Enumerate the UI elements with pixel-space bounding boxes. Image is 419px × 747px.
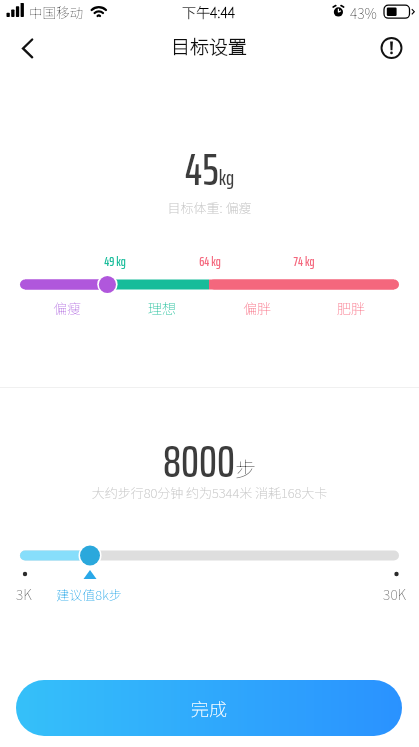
staticText: 完成 — [191, 695, 227, 721]
staticText: 理想 — [102, 298, 222, 318]
button[interactable]: 完成 — [16, 680, 402, 736]
staticText: 8000步 — [0, 426, 419, 497]
staticText: 目标设置 — [171, 32, 248, 60]
staticText: 45kg — [0, 134, 419, 205]
staticText: 3K — [16, 584, 32, 604]
staticText: 偏瘦 — [7, 298, 127, 318]
button[interactable]: Target weight slider — [0, 278, 419, 292]
staticText: 大约步行80分钟 约为5344米 消耗168大卡 — [0, 483, 419, 502]
staticText: 偏胖 — [197, 298, 317, 318]
staticText: 74 kg — [244, 251, 364, 271]
button[interactable]: Info — [371, 26, 419, 70]
button[interactable]: Step goal slider — [0, 549, 419, 563]
staticText: 43% — [350, 3, 377, 23]
staticText: 49 kg — [55, 251, 175, 271]
staticText: 目标体重: 偏瘦 — [0, 198, 419, 217]
staticText: 中国移动 — [29, 2, 83, 22]
staticText: 30K — [383, 584, 407, 604]
staticText: 64 kg — [150, 251, 270, 271]
staticText: 肥胖 — [291, 298, 411, 318]
staticText: 建议值8k步 — [29, 585, 149, 604]
button[interactable]: Back — [0, 26, 46, 70]
staticText: 下午4:44 — [182, 2, 236, 22]
